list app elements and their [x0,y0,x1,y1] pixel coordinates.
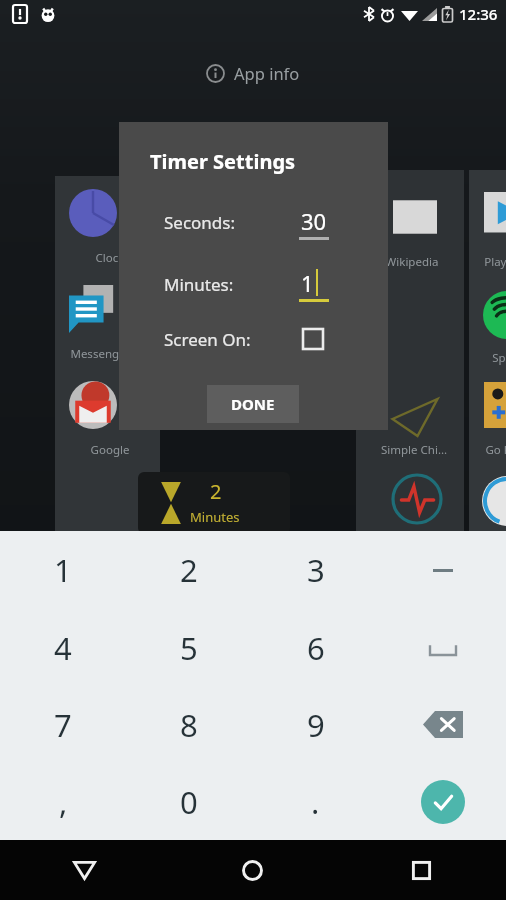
other: Done [421,780,465,824]
button[interactable]: 9 [252,686,379,763]
button[interactable]: App info [0,58,506,88]
button[interactable]: 8 [126,686,252,763]
button[interactable]: Recents [337,840,506,900]
staticText: Go Fr [470,442,506,458]
staticText: 12:36 [459,4,498,24]
button[interactable]: . [252,763,379,840]
button[interactable]: Home [168,840,337,900]
staticText: App info [234,62,300,84]
button[interactable]: 3 [252,531,379,609]
button[interactable]: DONE [207,385,299,423]
staticText: Seconds: [164,211,236,234]
staticText: 3 [307,549,325,591]
staticText: 5 [180,627,198,669]
staticText: 0 [180,781,198,823]
staticText: Minutes: [164,273,234,296]
button[interactable]: 6 [252,609,379,686]
other: Space [430,641,456,655]
button[interactable]: Backspace [379,686,506,763]
button[interactable]: Screen On checkbox [299,325,327,353]
staticText: 9 [307,704,325,746]
button[interactable]: 1 [0,531,126,609]
button[interactable]: 5 [126,609,252,686]
button[interactable]: Space [379,609,506,686]
staticText: , [59,781,68,823]
button[interactable]: Back [0,840,168,900]
button[interactable]: , [0,763,126,840]
staticText: Timer Settings [150,148,296,175]
staticText: . [311,781,320,823]
staticText: Spoti [476,350,506,366]
other: Backspace [423,711,463,738]
staticText: 1 [54,549,72,591]
staticText: Wikipedia [364,254,460,270]
button[interactable]: 4 [0,609,126,686]
button[interactable]: 30 [297,206,341,246]
button[interactable]: 1 [297,268,341,308]
button[interactable]: 7 [0,686,126,763]
button[interactable]: 0 [126,763,252,840]
staticText: Messenge [48,346,148,362]
staticText: Minutes [190,508,240,526]
staticText: 4 [54,627,72,669]
staticText: 1 [301,268,314,298]
staticText: Screen On: [164,328,251,351]
staticText: 2 [210,478,222,505]
staticText: Google [60,442,160,458]
staticText: 8 [180,704,198,746]
staticText: 2 [180,549,198,591]
button[interactable]: Minus [379,531,506,609]
staticText: 6 [307,627,325,669]
staticText: 7 [54,704,72,746]
staticText: 30 [301,206,327,236]
staticText: Clock [60,250,160,266]
staticText: DONE [231,394,275,414]
button[interactable]: 2 [126,531,252,609]
staticText: Play S [470,254,506,270]
button[interactable]: Done [379,763,506,840]
staticText: Simple Chi… [366,442,462,458]
